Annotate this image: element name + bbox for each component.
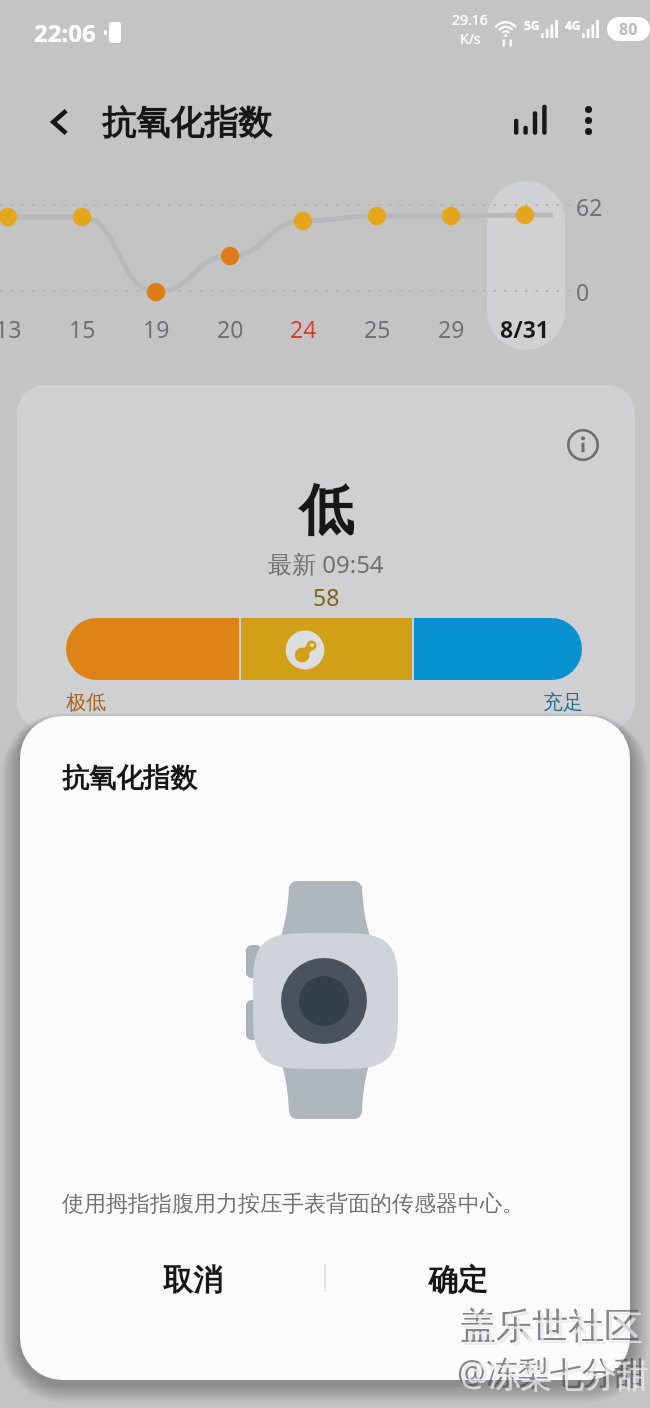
staticText: 29	[438, 313, 465, 344]
staticText: K/s	[460, 29, 481, 48]
staticText: 使用拇指指腹用力按压手表背面的传感器中心。	[62, 1190, 524, 1218]
staticText: 19	[143, 313, 170, 344]
staticText: 29.16	[452, 10, 488, 29]
staticText: 充足	[543, 690, 583, 715]
button[interactable]: 取消	[53, 1245, 333, 1315]
staticText: 62	[576, 191, 603, 222]
staticText: 抗氧化指数	[102, 101, 272, 144]
staticText: 58	[313, 581, 340, 612]
staticText: 8/31	[500, 313, 550, 344]
staticText: 25	[364, 313, 391, 344]
staticText: 低	[299, 476, 354, 545]
staticText: 24	[290, 313, 317, 344]
staticText: 极低	[66, 690, 106, 715]
staticText: 盖乐世社区	[460, 1303, 640, 1348]
staticText: 最新 09:54	[268, 547, 384, 580]
staticText: 确定	[428, 1261, 488, 1299]
staticText: 抗氧化指数	[62, 761, 197, 795]
staticText: 15	[69, 313, 96, 344]
staticText: 80	[619, 18, 638, 40]
button[interactable]: 确定	[318, 1245, 598, 1315]
staticText: 13	[0, 313, 22, 344]
staticText: 取消	[163, 1261, 223, 1299]
staticText: @冻梨七分甜	[457, 1350, 646, 1394]
staticText: 4G	[565, 17, 581, 33]
staticText: 22:06	[34, 16, 96, 49]
staticText: 20	[217, 313, 244, 344]
button[interactable]: More options	[562, 94, 614, 146]
button[interactable]: Back	[36, 98, 84, 146]
staticText: 5G	[524, 17, 540, 33]
staticText: 盖乐世社区	[463, 1306, 643, 1351]
staticText: @冻梨七分甜	[460, 1353, 649, 1397]
button[interactable]: Chart	[502, 95, 554, 147]
staticText: 0	[576, 276, 590, 307]
button[interactable]: Info	[559, 421, 607, 469]
